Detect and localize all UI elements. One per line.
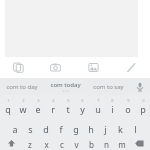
button[interactable]: 3 bbox=[30, 95, 45, 118]
staticText: b bbox=[89, 139, 94, 150]
button[interactable]: 5 bbox=[60, 95, 75, 118]
button[interactable]: Backspace bbox=[129, 139, 150, 150]
staticText: 5 bbox=[67, 98, 70, 103]
staticText: 7 bbox=[97, 98, 100, 103]
button[interactable]: s bbox=[23, 118, 38, 139]
button[interactable]: 0 bbox=[135, 95, 150, 118]
button[interactable]: com today bbox=[44, 78, 87, 95]
staticText: com today bbox=[50, 81, 81, 89]
button[interactable]: Draw bbox=[112, 57, 150, 78]
staticText: 0 bbox=[142, 98, 145, 103]
staticText: m bbox=[118, 139, 126, 150]
button[interactable]: f bbox=[53, 118, 68, 139]
staticText: q bbox=[5, 103, 11, 115]
button[interactable]: n bbox=[99, 139, 114, 150]
staticText: z bbox=[28, 139, 32, 150]
button[interactable]: Shift bbox=[0, 139, 22, 150]
staticText: n bbox=[104, 139, 109, 150]
button[interactable]: 4 bbox=[45, 95, 60, 118]
button[interactable]: g bbox=[68, 118, 83, 139]
button[interactable]: m bbox=[114, 139, 129, 150]
staticText: a bbox=[12, 123, 18, 135]
button[interactable]: d bbox=[38, 118, 53, 139]
button[interactable]: k bbox=[113, 118, 128, 139]
staticText: r bbox=[51, 103, 55, 115]
button[interactable]: 6 bbox=[75, 95, 90, 118]
button[interactable]: Gallery bbox=[74, 57, 112, 78]
button[interactable]: h bbox=[83, 118, 98, 139]
button[interactable]: com to day bbox=[0, 78, 44, 95]
staticText: s bbox=[28, 123, 33, 135]
button[interactable]: v bbox=[69, 139, 84, 150]
staticText: 9 bbox=[127, 98, 130, 103]
staticText: 8 bbox=[111, 98, 114, 103]
button[interactable]: 9 bbox=[120, 95, 135, 118]
staticText: d bbox=[43, 123, 49, 135]
staticText: u bbox=[95, 103, 101, 115]
button[interactable]: a bbox=[7, 118, 23, 139]
staticText: e bbox=[35, 103, 41, 115]
staticText: 4 bbox=[52, 98, 55, 103]
button[interactable]: 2 bbox=[15, 95, 30, 118]
button[interactable]: x bbox=[38, 139, 54, 150]
button[interactable]: j bbox=[98, 118, 113, 139]
staticText: t bbox=[66, 103, 70, 115]
button[interactable]: 8 bbox=[105, 95, 120, 118]
button[interactable]: z bbox=[22, 139, 38, 150]
staticText: 3 bbox=[37, 98, 40, 103]
staticText: p bbox=[140, 103, 146, 115]
staticText: j bbox=[104, 123, 107, 135]
button[interactable]: c bbox=[54, 139, 69, 150]
staticText: w bbox=[19, 103, 27, 115]
button[interactable]: com to say bbox=[87, 78, 130, 95]
staticText: c bbox=[60, 139, 64, 150]
button[interactable]: Voice input bbox=[130, 78, 150, 95]
staticText: g bbox=[73, 123, 79, 135]
button[interactable]: 1 bbox=[0, 95, 15, 118]
staticText: l bbox=[134, 123, 137, 135]
button[interactable]: l bbox=[128, 118, 143, 139]
staticText: y bbox=[80, 103, 85, 115]
button[interactable]: 7 bbox=[90, 95, 105, 118]
staticText: com to say bbox=[93, 83, 124, 91]
staticText: k bbox=[118, 123, 123, 135]
staticText: i bbox=[111, 103, 114, 115]
staticText: o bbox=[125, 103, 131, 115]
button[interactable]: b bbox=[84, 139, 99, 150]
staticText: h bbox=[88, 123, 94, 135]
staticText: 2 bbox=[22, 98, 25, 103]
button[interactable]: Clipboard bbox=[0, 57, 37, 78]
staticText: 1 bbox=[7, 98, 10, 103]
staticText: f bbox=[59, 123, 63, 135]
staticText: 6 bbox=[81, 98, 84, 103]
button[interactable]: Camera bbox=[37, 57, 74, 78]
staticText: v bbox=[74, 139, 79, 150]
staticText: x bbox=[44, 139, 49, 150]
staticText: com to day bbox=[6, 83, 38, 91]
